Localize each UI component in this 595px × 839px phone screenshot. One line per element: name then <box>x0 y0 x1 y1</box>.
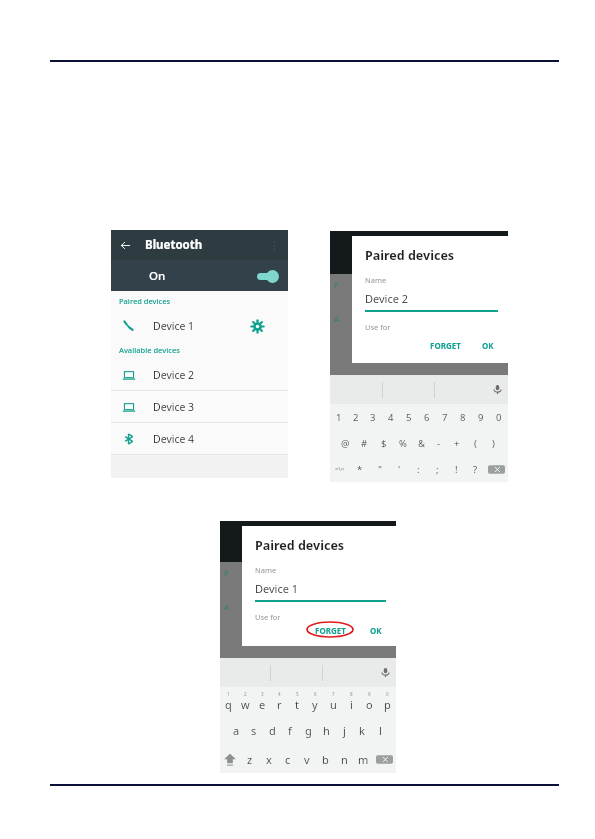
staticText: q <box>225 697 232 712</box>
staticText: Name <box>365 275 387 285</box>
button[interactable]: " <box>370 456 390 482</box>
button[interactable]: ? <box>466 456 485 482</box>
button[interactable]: OK <box>366 622 386 637</box>
button[interactable]: c <box>278 745 297 773</box>
staticText: v <box>304 752 310 767</box>
button[interactable]: v <box>297 745 316 773</box>
button[interactable]: FORGET <box>311 622 350 637</box>
button[interactable]: # <box>355 430 374 456</box>
button[interactable]: On <box>111 260 288 291</box>
button[interactable]: 5 <box>400 404 418 430</box>
button[interactable]: 8 <box>342 687 360 716</box>
button[interactable]: Voice input <box>486 375 508 404</box>
button[interactable]: 4 <box>271 687 288 716</box>
button[interactable]: 1 <box>220 687 237 716</box>
staticText: ( <box>474 437 477 450</box>
staticText: * <box>357 463 363 476</box>
button[interactable]: Device 1 <box>111 310 288 341</box>
button[interactable]: 0 <box>378 687 396 716</box>
staticText: k <box>359 723 365 738</box>
button[interactable]: Backspace <box>485 456 508 482</box>
staticText: 3 <box>261 691 264 697</box>
staticText: j <box>343 723 346 738</box>
button[interactable]: x <box>259 745 278 773</box>
staticText: 7 <box>442 411 448 424</box>
button[interactable]: Back <box>118 238 133 253</box>
button[interactable]: ! <box>447 456 466 482</box>
button[interactable]: h <box>317 716 335 745</box>
button[interactable]: d <box>263 716 281 745</box>
button[interactable]: z <box>240 745 259 773</box>
button[interactable]: 6 <box>418 404 436 430</box>
staticText: 6 <box>424 411 430 424</box>
button[interactable]: Voice input <box>374 658 396 687</box>
button[interactable]: 9 <box>472 404 490 430</box>
staticText: Use for <box>365 322 391 332</box>
button[interactable]: + <box>448 430 466 456</box>
button[interactable]: j <box>335 716 353 745</box>
button[interactable]: 5 <box>288 687 306 716</box>
button[interactable]: * <box>350 456 370 482</box>
button[interactable]: 7 <box>324 687 342 716</box>
button[interactable]: 8 <box>454 404 472 430</box>
button[interactable]: k <box>353 716 371 745</box>
button[interactable]: ) <box>484 430 502 456</box>
staticText: A <box>334 314 339 324</box>
button[interactable]: ' <box>390 456 409 482</box>
staticText: OK <box>482 340 494 351</box>
button[interactable]: Device 2 <box>111 359 288 390</box>
button[interactable]: FORGET <box>426 337 465 354</box>
button[interactable]: 7 <box>436 404 454 430</box>
button[interactable]: Backspace <box>373 745 396 773</box>
staticText: h <box>323 723 330 738</box>
staticText: p <box>384 697 391 712</box>
button[interactable]: 9 <box>360 687 378 716</box>
button[interactable]: More options <box>266 237 282 253</box>
button[interactable]: - <box>430 430 448 456</box>
staticText: 8 <box>460 411 466 424</box>
button[interactable]: OK <box>478 337 498 354</box>
staticText: + <box>454 437 460 450</box>
button[interactable]: l <box>371 716 389 745</box>
button[interactable]: 0 <box>490 404 508 430</box>
button[interactable]: Device 4 <box>111 423 288 454</box>
button[interactable]: 2 <box>347 404 364 430</box>
button[interactable]: a <box>227 716 245 745</box>
button[interactable]: 1 <box>330 404 347 430</box>
button[interactable]: 3 <box>254 687 271 716</box>
button[interactable]: 2 <box>237 687 254 716</box>
button[interactable]: : <box>409 456 428 482</box>
staticText: ) <box>492 437 495 450</box>
button[interactable]: ( <box>466 430 484 456</box>
staticText: 7 <box>332 691 335 697</box>
staticText: Available devices <box>119 345 180 355</box>
button[interactable]: f <box>281 716 299 745</box>
button[interactable]: s <box>245 716 263 745</box>
staticText: Use for <box>255 612 281 622</box>
button[interactable]: m <box>354 745 373 773</box>
staticText: Paired devices <box>365 247 455 264</box>
button[interactable]: $ <box>374 430 393 456</box>
button[interactable]: 6 <box>306 687 324 716</box>
button[interactable]: =\< <box>330 456 350 482</box>
staticText: Device 1 <box>255 581 299 596</box>
button[interactable]: & <box>412 430 430 456</box>
button[interactable]: g <box>299 716 317 745</box>
button[interactable]: Shift <box>220 745 240 773</box>
staticText: 5 <box>296 691 299 697</box>
button[interactable]: % <box>393 430 412 456</box>
staticText: Device 3 <box>153 400 195 414</box>
button[interactable]: Device settings <box>245 314 269 338</box>
button[interactable]: ; <box>428 456 447 482</box>
staticText: # <box>361 437 368 450</box>
staticText: 6 <box>314 691 317 697</box>
button[interactable]: Device 3 <box>111 391 288 422</box>
button[interactable]: @ <box>336 430 355 456</box>
staticText: 0 <box>386 691 389 697</box>
staticText: ! <box>455 463 458 476</box>
button[interactable]: b <box>316 745 335 773</box>
button[interactable]: 4 <box>382 404 400 430</box>
button[interactable]: n <box>335 745 354 773</box>
button[interactable]: 3 <box>364 404 382 430</box>
staticText: 1 <box>336 411 342 424</box>
